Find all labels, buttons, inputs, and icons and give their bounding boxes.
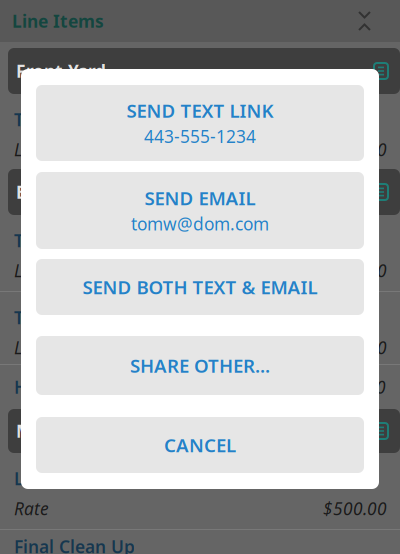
- button[interactable]: SEND EMAIL: [36, 172, 364, 249]
- button[interactable]: Trim Hedges: [0, 94, 400, 169]
- staticText: Lawn Care: [14, 467, 101, 490]
- staticText: Front Yard: [16, 59, 106, 82]
- staticText: $80.00: [332, 375, 386, 398]
- button[interactable]: Final Clean Up: [0, 530, 400, 554]
- staticText: SEND TEXT LINK: [126, 98, 273, 123]
- button[interactable]: Haul Away: [0, 365, 400, 409]
- staticText: $150.00: [323, 259, 387, 282]
- button[interactable]: Lawn Care: [0, 453, 400, 529]
- staticText: SEND BOTH TEXT & EMAIL: [82, 275, 317, 299]
- staticText: Misc: [16, 419, 55, 442]
- staticText: 443-555-1234: [144, 125, 256, 148]
- button[interactable]: Collapse: [359, 12, 370, 30]
- staticText: Line Items: [12, 9, 104, 32]
- button[interactable]: Trim Hedges: [0, 215, 400, 291]
- staticText: Trim Hedges: [14, 229, 122, 252]
- staticText: $120.00: [323, 138, 387, 161]
- button[interactable]: Trim Trees: [0, 292, 400, 364]
- staticText: Rate: [14, 497, 49, 520]
- staticText: Trim Hedges: [14, 108, 122, 131]
- button[interactable]: CANCEL: [36, 417, 364, 473]
- button[interactable]: Edit Misc items: [374, 423, 388, 439]
- staticText: $500.00: [323, 497, 387, 520]
- staticText: Haul Away: [14, 375, 103, 398]
- button[interactable]: SHARE OTHER...: [36, 336, 364, 395]
- staticText: Final Clean Up: [14, 535, 135, 554]
- staticText: Labor: [14, 259, 59, 282]
- staticText: tomw@dom.com: [131, 212, 269, 235]
- button[interactable]: Edit Back Yard items: [374, 184, 388, 200]
- button[interactable]: Edit Front Yard items: [374, 63, 388, 79]
- staticText: SHARE OTHER...: [130, 353, 270, 378]
- staticText: Labor: [14, 336, 59, 359]
- staticText: $225.00: [323, 336, 387, 359]
- button[interactable]: SEND BOTH TEXT & EMAIL: [36, 259, 364, 315]
- staticText: Trim Trees: [14, 306, 103, 329]
- staticText: Back Yard: [16, 180, 101, 203]
- staticText: Labor: [14, 138, 59, 161]
- staticText: CANCEL: [164, 433, 236, 457]
- button[interactable]: SEND TEXT LINK: [36, 85, 364, 161]
- staticText: SEND EMAIL: [144, 186, 255, 210]
